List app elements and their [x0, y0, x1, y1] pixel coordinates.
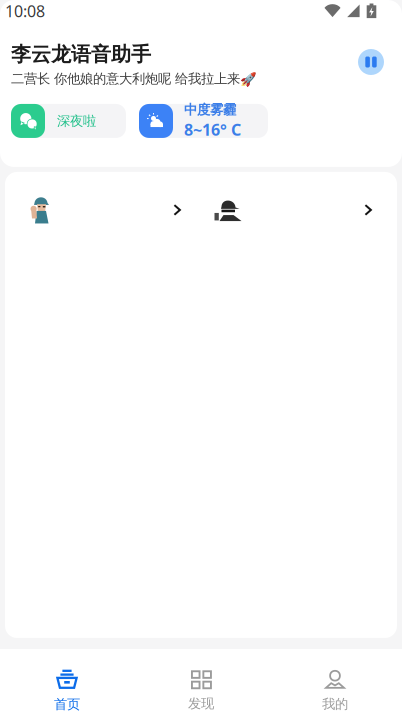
button[interactable]: 中度雾霾	[139, 104, 268, 138]
staticText: 深夜啦	[57, 113, 96, 129]
button[interactable]: 首页	[0, 648, 134, 721]
staticText: 二营长 你他娘的意大利炮呢 给我拉上来🚀	[11, 71, 257, 87]
button[interactable]: Pause	[352, 45, 390, 79]
staticText: 发现	[188, 695, 214, 712]
staticText: 我的	[322, 696, 348, 712]
staticText: 李云龙语音助手	[11, 42, 151, 67]
button[interactable]: 我的	[268, 649, 402, 721]
staticText: 中度雾霾	[184, 102, 236, 118]
staticText: 8~16° C	[184, 119, 241, 140]
button[interactable]: 发现	[134, 649, 268, 721]
staticText: 10:08	[5, 0, 45, 22]
button[interactable]	[201, 186, 396, 234]
button[interactable]: 深夜啦	[11, 104, 126, 138]
staticText: 首页	[54, 696, 80, 712]
button[interactable]	[6, 186, 201, 234]
